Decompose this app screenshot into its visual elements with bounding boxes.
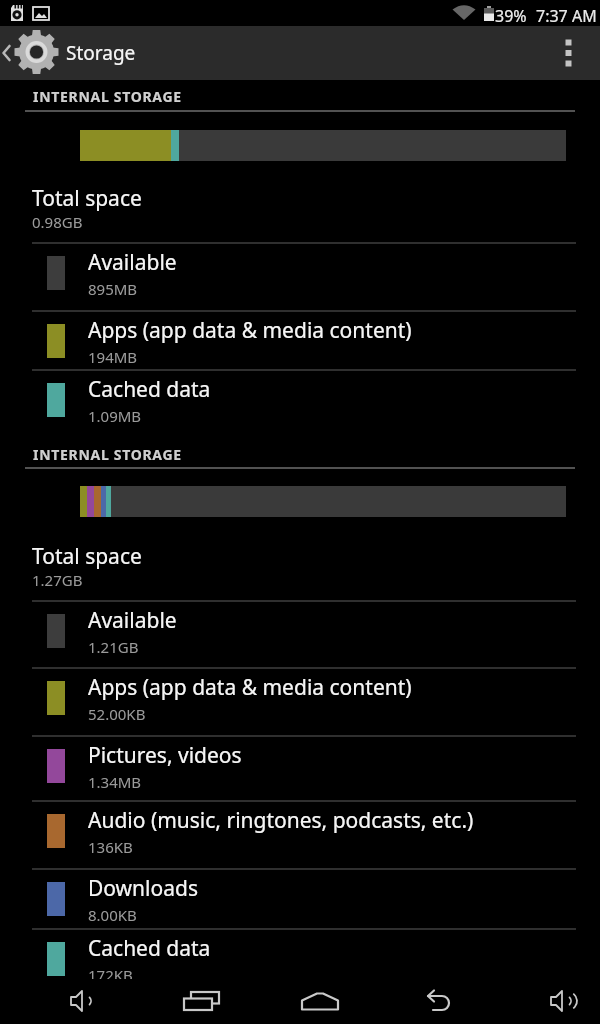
staticText: 7:37 AM [536,5,597,27]
staticText: 1.21GB [88,637,139,657]
staticText: 1.27GB [32,570,83,590]
button[interactable] [536,979,584,1024]
button[interactable] [176,979,224,1024]
button[interactable] [416,979,464,1024]
staticText: Available [88,606,177,635]
staticText: 136KB [88,837,133,857]
button[interactable] [546,26,600,80]
button[interactable]: Apps (app data & media content) [0,312,600,369]
button[interactable]: Available [0,602,600,667]
staticText: 172KB [88,965,133,985]
button[interactable]: Downloads [0,870,600,928]
staticText: Downloads [88,874,198,903]
button[interactable] [296,979,344,1024]
staticText: Available [88,248,177,277]
staticText: Total space [32,542,142,571]
staticText: Apps (app data & media content) [88,673,412,702]
button[interactable] [56,979,104,1024]
staticText: 39% [495,5,527,27]
button[interactable]: Pictures, videos [0,737,600,800]
staticText: 0.98GB [32,212,83,232]
staticText: Apps (app data & media content) [88,316,412,345]
staticText: 52.00KB [88,704,146,724]
staticText: Pictures, videos [88,741,242,770]
staticText: 1.09MB [88,406,142,426]
button[interactable]: Cached data [0,371,600,435]
button[interactable]: Storage [0,26,140,80]
staticText: Cached data [88,375,211,404]
button[interactable]: Audio (music, ringtones, podcasts, etc.) [0,802,600,868]
staticText: INTERNAL STORAGE [33,87,182,106]
staticText: Total space [32,184,142,213]
staticText: Storage [66,40,136,66]
staticText: Cached data [88,934,211,963]
staticText: 194MB [88,347,138,367]
button[interactable]: Cached data [0,930,600,990]
staticText: Audio (music, ringtones, podcasts, etc.) [88,806,474,835]
staticText: 1.34MB [88,772,142,792]
button[interactable]: Available [0,244,600,310]
button[interactable]: Apps (app data & media content) [0,669,600,735]
staticText: 895MB [88,279,138,299]
staticText: 8.00KB [88,905,137,925]
staticText: INTERNAL STORAGE [33,445,182,464]
